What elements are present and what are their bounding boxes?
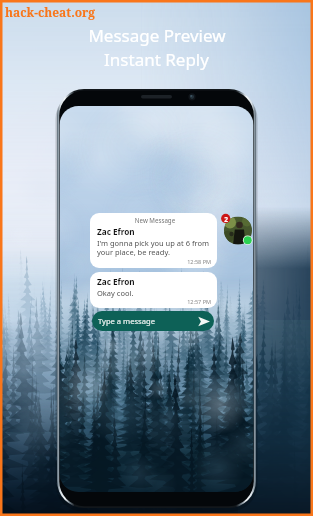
button[interactable]: Type a message [92, 311, 214, 331]
staticText: Zac Efron [97, 276, 135, 287]
staticText: Message Preview [88, 24, 226, 47]
staticText: I'm gonna pick you up at 6 from your pla… [97, 238, 213, 258]
staticText: New Message [97, 216, 213, 224]
staticText: Zac Efron [97, 226, 135, 237]
button[interactable]: Zac Efron [90, 272, 217, 308]
staticText: hack-cheat.org [5, 4, 96, 20]
staticText: Instant Reply [104, 48, 209, 71]
other: Send [198, 316, 210, 327]
staticText: 2 [223, 215, 229, 224]
staticText: 12:58 PM [97, 258, 211, 265]
staticText: 12:57 PM [97, 298, 211, 305]
staticText: Okay cool. [97, 288, 134, 298]
button[interactable]: New Message [90, 213, 217, 268]
staticText: Type a message [98, 316, 198, 326]
